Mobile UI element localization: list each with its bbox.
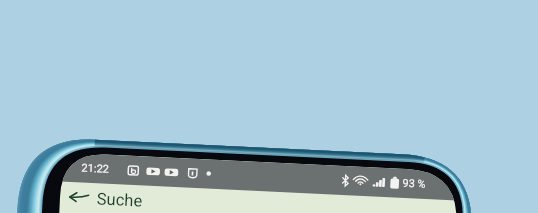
other: Photo of a phone showing the Suche scree… [0,0,538,213]
